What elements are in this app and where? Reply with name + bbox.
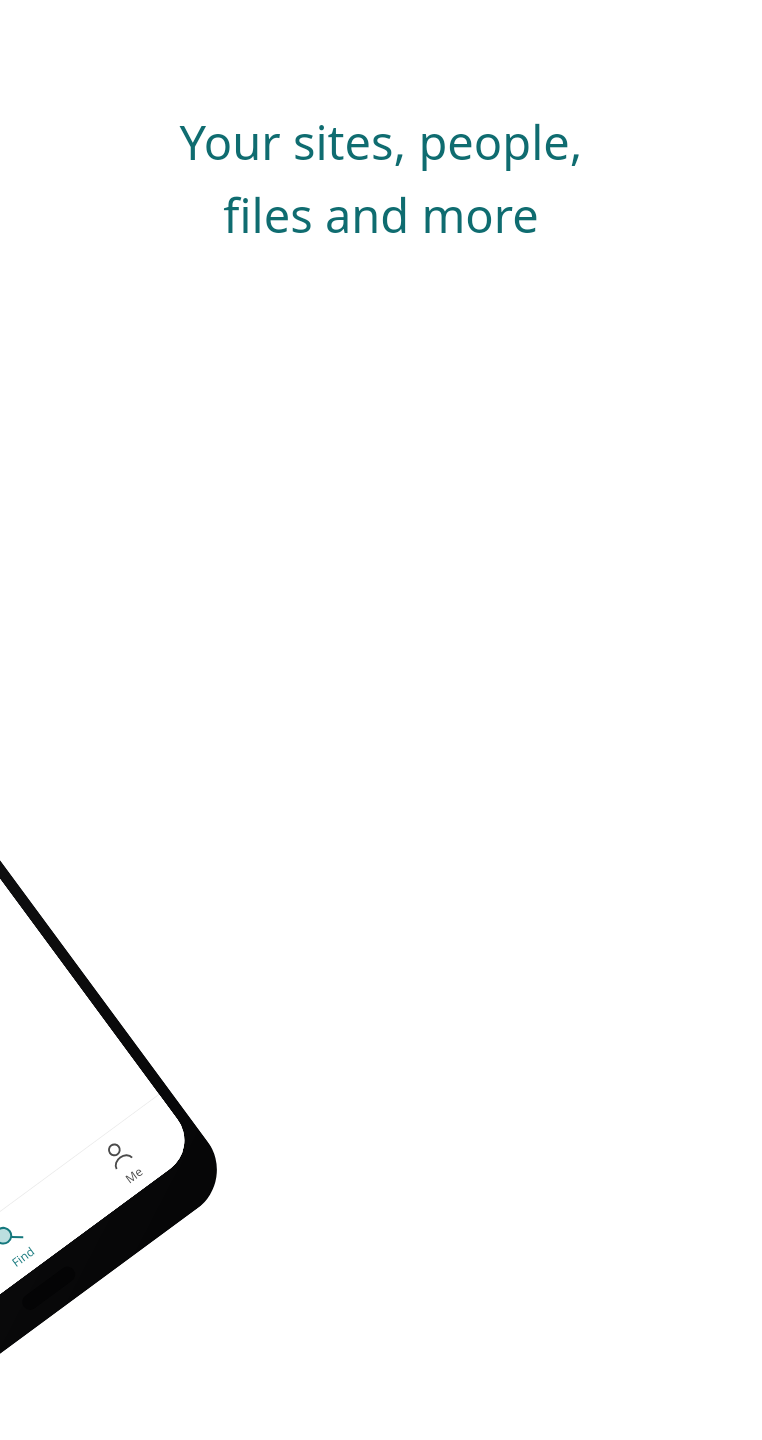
staticText: Your sites, people, files and more [30,110,732,246]
button[interactable]: Find [0,1176,88,1310]
staticText: Find [8,1242,38,1270]
button[interactable]: Me [49,1095,199,1229]
staticText: Me [122,1163,146,1186]
